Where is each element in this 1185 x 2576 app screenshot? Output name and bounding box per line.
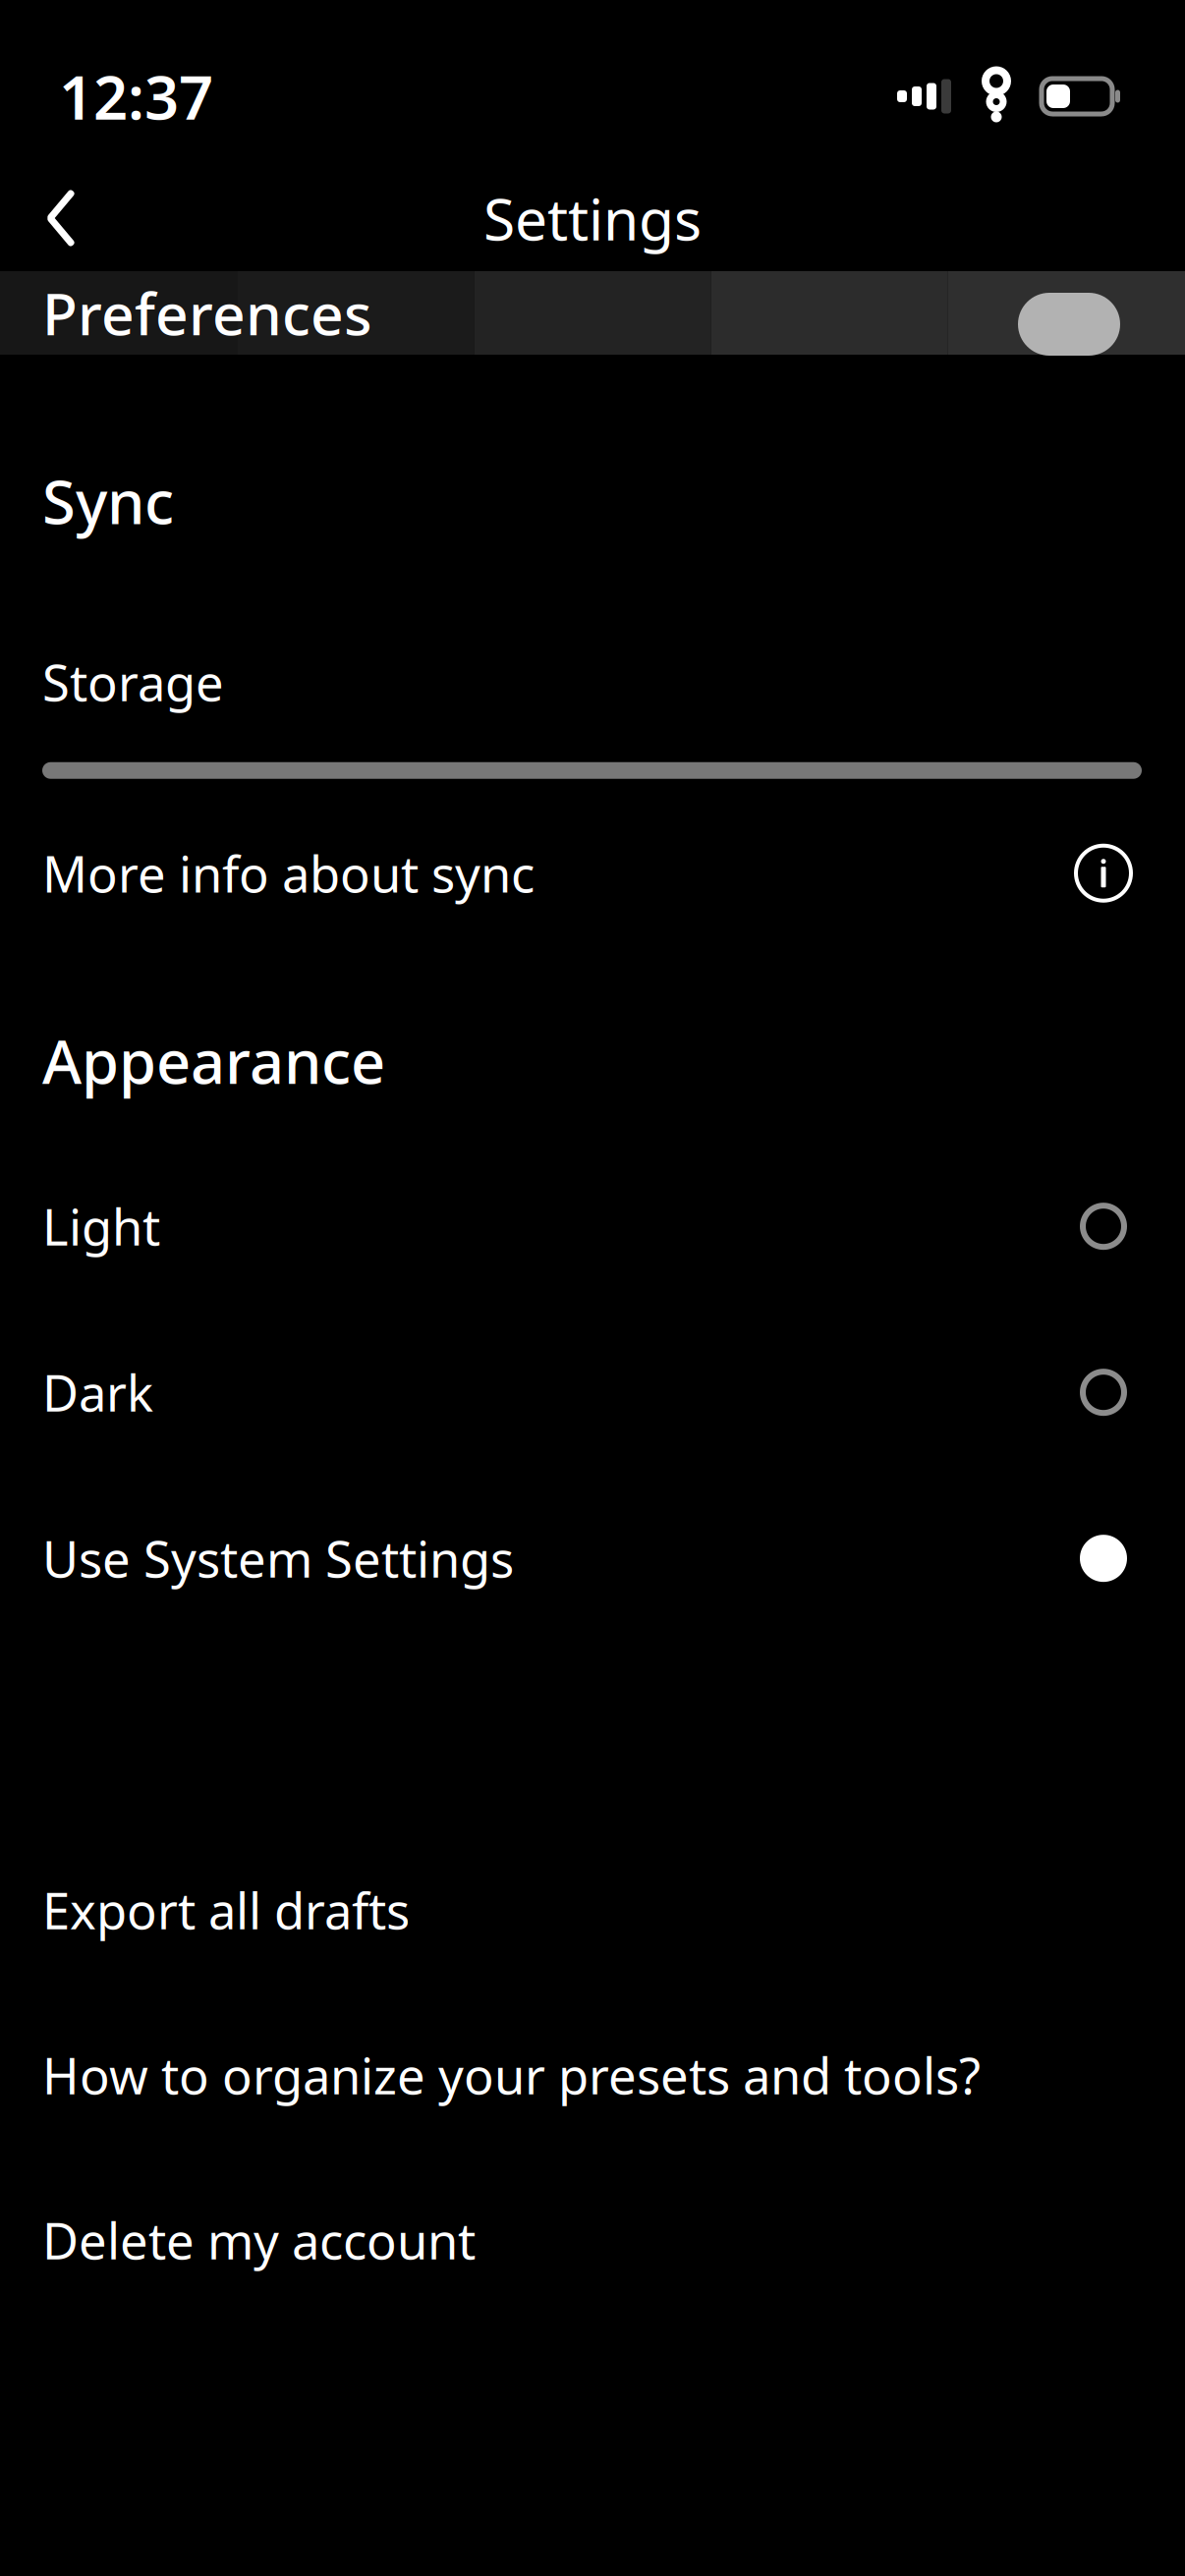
staticText: Appearance bbox=[42, 1020, 385, 1100]
staticText: Dark bbox=[42, 1359, 153, 1425]
button[interactable]: Back bbox=[14, 171, 108, 265]
staticText: Settings bbox=[483, 180, 702, 256]
staticText: Sync bbox=[42, 461, 174, 541]
staticText: How to organize your presets and tools? bbox=[42, 2042, 981, 2108]
button[interactable]: More info about sync bbox=[0, 834, 1185, 912]
staticText: Storage bbox=[42, 649, 224, 715]
button[interactable]: How to organize your presets and tools? bbox=[0, 2036, 1185, 2114]
staticText: Use System Settings bbox=[42, 1525, 514, 1591]
staticText: Delete my account bbox=[42, 2207, 476, 2273]
button[interactable]: Use System Settings bbox=[0, 1519, 1185, 1598]
staticText: Preferences bbox=[42, 275, 372, 351]
staticText: Export all drafts bbox=[42, 1877, 410, 1943]
staticText: More info about sync bbox=[42, 840, 535, 906]
button[interactable]: Export all drafts bbox=[0, 1871, 1185, 1949]
button[interactable]: Delete my account bbox=[0, 2201, 1185, 2279]
button[interactable]: Light bbox=[0, 1187, 1185, 1266]
button[interactable]: Dark bbox=[0, 1353, 1185, 1432]
staticText: Light bbox=[42, 1193, 160, 1259]
staticText: 12:37 bbox=[59, 56, 213, 136]
